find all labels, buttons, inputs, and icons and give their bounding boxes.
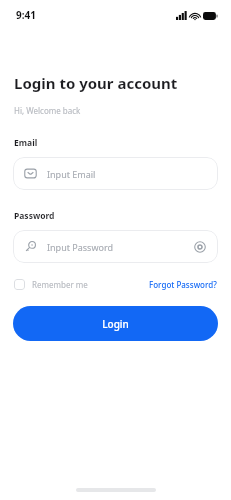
button[interactable]: Remember me (14, 277, 88, 292)
staticText: Input Password (47, 241, 192, 253)
staticText: Email (14, 137, 38, 149)
button[interactable]: Login (13, 306, 218, 341)
button[interactable]: Show password (192, 239, 208, 255)
staticText: Forgot Password? (149, 279, 217, 290)
staticText: 9:41 (16, 8, 36, 22)
staticText: Hi, Welcome back (14, 105, 81, 116)
staticText: Password (14, 210, 55, 222)
button[interactable]: Input Password (13, 230, 218, 263)
staticText: Login to your account (14, 73, 178, 93)
staticText: Login (102, 317, 129, 331)
button[interactable]: Forgot Password? (149, 277, 217, 292)
staticText: Input Email (47, 168, 96, 180)
staticText: Remember me (32, 279, 88, 290)
button[interactable]: Input Email (13, 157, 218, 190)
